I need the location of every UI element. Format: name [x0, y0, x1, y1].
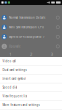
staticText: 2 [30, 51, 32, 57]
button[interactable]: Video call [0, 57, 62, 66]
button[interactable]: Speed dial [0, 83, 62, 92]
staticText: Insert card symbol [2, 77, 26, 80]
button[interactable]: Upgrade [0, 42, 62, 51]
button[interactable]: More features and settings [0, 101, 62, 110]
button[interactable]: Mini SIM Transmission CPU [0, 22, 62, 32]
staticText: Express GPRS Acceptance 7 [9, 35, 45, 38]
staticText: Video call [2, 59, 16, 63]
button[interactable]: Insert card symbol [0, 74, 62, 83]
staticText: View frequent list [2, 94, 27, 98]
staticText: Normal Transmission Details [9, 16, 45, 19]
button[interactable]: Normal Transmission Details [0, 13, 62, 22]
staticText: Upgrade [9, 45, 21, 48]
button[interactable]: View frequent list [0, 92, 62, 101]
button[interactable]: Dual card settings [0, 66, 62, 75]
staticText: 3 [51, 51, 53, 57]
staticText: Dual card settings [2, 68, 26, 72]
staticText: More features and settings [2, 103, 39, 107]
staticText: Speed dial [2, 86, 17, 89]
staticText: 1 [9, 51, 11, 57]
staticText: Mini SIM Transmission CPU [9, 25, 44, 29]
button[interactable]: Express GPRS Acceptance 7 [0, 32, 62, 42]
